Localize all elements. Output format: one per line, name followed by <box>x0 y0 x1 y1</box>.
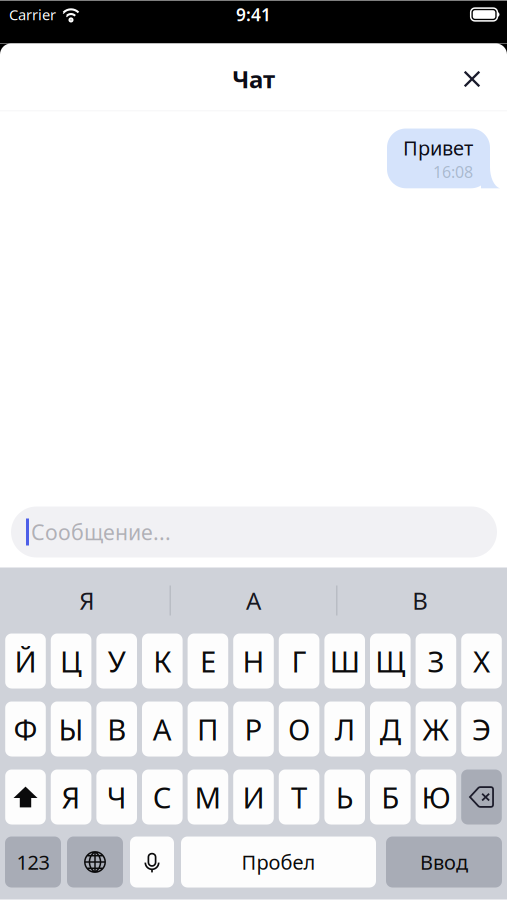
button[interactable]: Л <box>324 701 365 756</box>
staticText: А <box>153 709 172 748</box>
staticText: Щ <box>375 641 405 680</box>
staticText: К <box>153 641 171 680</box>
staticText: С <box>153 777 172 816</box>
staticText: Сообщение... <box>31 518 171 546</box>
button[interactable]: У <box>96 633 137 688</box>
button[interactable]: Т <box>279 769 319 824</box>
staticText: Я <box>79 585 94 616</box>
button[interactable]: М <box>188 769 228 824</box>
staticText: 123 <box>16 849 49 875</box>
button[interactable]: Е <box>188 633 228 688</box>
staticText: Л <box>335 709 355 748</box>
staticText: В <box>412 585 428 616</box>
button[interactable]: Д <box>370 701 411 756</box>
staticText: А <box>246 585 261 616</box>
button[interactable]: Shift <box>5 769 46 824</box>
button[interactable]: Ц <box>51 633 91 688</box>
button[interactable]: С <box>142 769 183 824</box>
staticText: Г <box>292 641 307 680</box>
staticText: В <box>107 709 126 748</box>
staticText: Э <box>472 709 491 748</box>
staticText: П <box>197 709 219 748</box>
staticText: З <box>427 641 444 680</box>
button[interactable]: А <box>171 572 336 629</box>
button[interactable]: 123 <box>5 836 61 887</box>
button[interactable]: Dictation <box>130 836 174 887</box>
button[interactable]: Н <box>233 633 274 688</box>
staticText: Т <box>291 777 307 816</box>
button[interactable]: И <box>233 769 274 824</box>
button[interactable]: Пробел <box>181 836 376 887</box>
button[interactable]: Г <box>279 633 319 688</box>
staticText: Е <box>200 641 216 680</box>
button[interactable]: Ю <box>416 769 456 824</box>
button[interactable]: Ь <box>324 769 365 824</box>
button[interactable]: Х <box>461 633 502 688</box>
button[interactable]: Я <box>51 769 91 824</box>
staticText: Привет <box>403 134 473 161</box>
button[interactable]: В <box>96 701 137 756</box>
button[interactable]: О <box>279 701 319 756</box>
button[interactable]: Я <box>4 572 170 629</box>
button[interactable]: Р <box>233 701 274 756</box>
staticText: Й <box>14 641 36 680</box>
staticText: Ж <box>422 709 449 748</box>
button[interactable]: Ж <box>416 701 456 756</box>
staticText: Д <box>380 709 401 748</box>
staticText: Б <box>381 777 399 816</box>
button[interactable]: Ф <box>5 701 46 756</box>
staticText: Ф <box>13 709 37 748</box>
staticText: Carrier <box>9 5 56 24</box>
staticText: Я <box>62 777 81 816</box>
button[interactable]: Ы <box>51 701 91 756</box>
button[interactable]: Щ <box>370 633 411 688</box>
staticText: 9:41 <box>236 3 271 26</box>
staticText: Х <box>473 641 490 680</box>
staticText: Ч <box>107 777 127 816</box>
staticText: 16:08 <box>433 161 473 182</box>
button[interactable]: Ч <box>96 769 137 824</box>
button[interactable]: Й <box>5 633 46 688</box>
staticText: Ь <box>336 777 354 816</box>
staticText: И <box>242 777 264 816</box>
staticText: Ю <box>421 777 450 816</box>
staticText: Ш <box>330 641 360 680</box>
button[interactable]: Ввод <box>386 836 502 887</box>
button[interactable]: А <box>142 701 183 756</box>
button[interactable]: Backspace <box>461 769 502 824</box>
staticText: Пробел <box>241 849 315 875</box>
staticText: О <box>288 709 310 748</box>
staticText: М <box>194 777 221 816</box>
button[interactable]: Close <box>450 57 494 101</box>
button[interactable]: З <box>416 633 456 688</box>
staticText: Чат <box>232 63 275 95</box>
staticText: Ц <box>60 641 82 680</box>
button[interactable]: Б <box>370 769 411 824</box>
button[interactable]: Next keyboard <box>67 836 123 887</box>
button[interactable]: Ш <box>324 633 365 688</box>
staticText: У <box>108 641 126 680</box>
button[interactable]: К <box>142 633 183 688</box>
button[interactable]: П <box>188 701 228 756</box>
button[interactable]: В <box>337 572 503 629</box>
staticText: Ы <box>59 709 84 748</box>
staticText: Н <box>242 641 264 680</box>
staticText: Р <box>244 709 262 748</box>
button[interactable]: Э <box>461 701 502 756</box>
staticText: Ввод <box>420 849 468 875</box>
